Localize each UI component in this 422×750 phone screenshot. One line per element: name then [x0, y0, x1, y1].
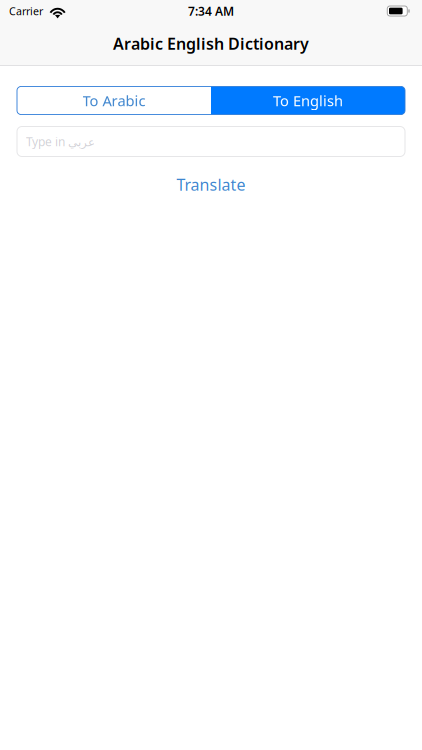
staticText: To Arabic — [82, 91, 145, 110]
staticText: Carrier — [9, 4, 43, 18]
staticText: Arabic English Dictionary — [113, 33, 309, 54]
staticText: Type in عربي — [26, 133, 95, 149]
staticText: 7:34 AM — [188, 3, 234, 19]
staticText: Translate — [176, 174, 245, 195]
button[interactable]: To Arabic — [17, 86, 211, 114]
staticText: To English — [273, 91, 343, 110]
button[interactable]: To English — [211, 86, 405, 114]
button[interactable]: Translate — [17, 173, 405, 195]
